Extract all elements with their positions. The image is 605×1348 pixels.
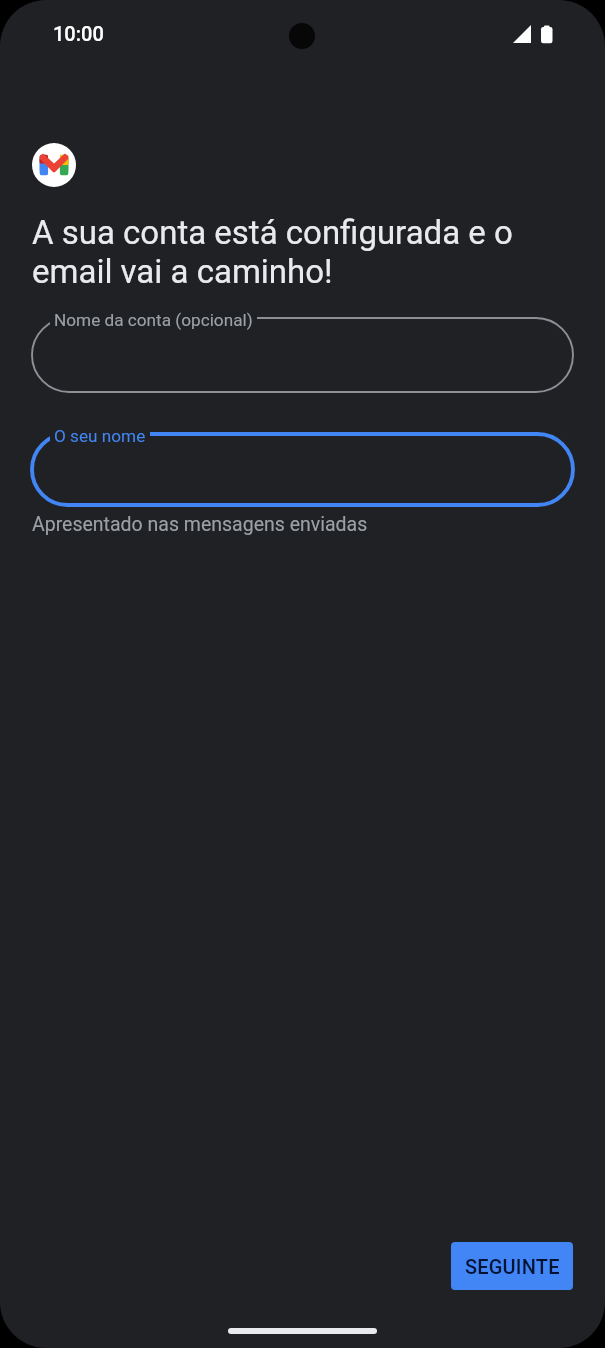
other: Home bbox=[228, 1328, 377, 1334]
staticText: Nome da conta (opcional) bbox=[54, 310, 253, 330]
staticText: A sua conta está configurada e o email v… bbox=[32, 213, 573, 291]
button[interactable]: Nome da conta (opcional) bbox=[32, 318, 573, 392]
staticText: 10:00 bbox=[53, 22, 104, 45]
staticText: SEGUINTE bbox=[465, 1255, 560, 1278]
staticText: O seu nome bbox=[54, 426, 146, 446]
button[interactable]: SEGUINTE bbox=[451, 1242, 573, 1290]
other: Gmail bbox=[32, 143, 76, 187]
staticText: Apresentado nas mensagens enviadas bbox=[32, 513, 368, 536]
button[interactable]: O seu nome bbox=[32, 434, 573, 505]
